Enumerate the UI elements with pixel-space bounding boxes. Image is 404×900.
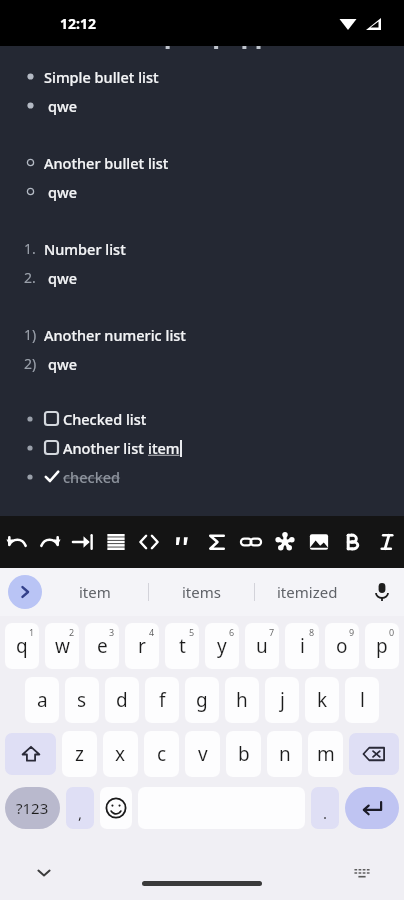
staticText: r <box>138 633 146 659</box>
button[interactable]: Undo <box>0 516 33 568</box>
button[interactable]: Image <box>302 516 336 568</box>
staticText: 3 <box>109 626 115 638</box>
staticText: 12:12 <box>60 14 96 33</box>
staticText: v <box>198 741 208 767</box>
button[interactable]: Another bullet list <box>0 148 404 177</box>
staticText: 1) <box>24 325 37 344</box>
button[interactable]: x <box>103 731 138 777</box>
button[interactable]: Redo <box>33 516 66 568</box>
staticText: qwe <box>48 96 78 116</box>
button[interactable]: Voice input <box>360 568 404 616</box>
button[interactable]: 1) <box>0 320 404 349</box>
button[interactable]: m <box>308 731 343 777</box>
staticText: y <box>217 633 227 659</box>
button[interactable]: Simple bullet list <box>0 62 404 91</box>
staticText: qwe <box>48 268 78 288</box>
button[interactable]: Link <box>234 516 268 568</box>
button[interactable]: g <box>185 677 219 723</box>
staticText: w <box>55 633 70 659</box>
button[interactable]: qwe <box>0 91 404 120</box>
staticText: 6 <box>229 626 235 638</box>
button[interactable]: ?123 <box>5 787 60 829</box>
button[interactable]: d <box>105 677 139 723</box>
staticText: h <box>236 687 248 713</box>
button[interactable]: q <box>5 623 39 669</box>
button[interactable]: More suggestions <box>8 575 42 609</box>
button[interactable]: z <box>62 731 97 777</box>
button[interactable]: c <box>144 731 179 777</box>
button[interactable]: qwe <box>0 177 404 206</box>
button[interactable]: items <box>149 568 254 616</box>
button[interactable]: i <box>285 623 319 669</box>
button[interactable]: Backspace <box>349 733 399 775</box>
button[interactable]: Code <box>132 516 166 568</box>
button[interactable]: Checked list <box>0 404 404 433</box>
button[interactable]: Italic <box>370 516 404 568</box>
staticText: j <box>280 687 285 713</box>
button[interactable]: Switch input method <box>344 855 380 891</box>
staticText: qwe <box>48 182 78 202</box>
staticText: . <box>323 803 328 823</box>
button[interactable]: l <box>345 677 379 723</box>
staticText: 2) <box>24 354 37 373</box>
button[interactable]: item <box>42 568 148 616</box>
button[interactable]: Indent <box>66 516 99 568</box>
button[interactable]: v <box>185 731 220 777</box>
button[interactable]: Another list <box>0 433 404 462</box>
button[interactable]: , <box>66 787 94 829</box>
staticText: m <box>317 741 335 767</box>
staticText: 4 <box>149 626 155 638</box>
button[interactable]: Enter <box>345 787 399 829</box>
button[interactable]: 1. <box>0 234 404 263</box>
button[interactable]: Simple bullet list <box>0 46 404 516</box>
button[interactable]: t <box>165 623 199 669</box>
staticText: 1. <box>24 239 36 258</box>
staticText: Another list <box>63 438 148 458</box>
staticText: i <box>300 633 305 659</box>
button[interactable]: e <box>85 623 119 669</box>
staticText: e <box>97 633 108 659</box>
button[interactable]: Bold <box>336 516 370 568</box>
staticText: item <box>148 438 180 458</box>
staticText: Number list <box>44 239 126 259</box>
staticText: p <box>376 633 388 659</box>
staticText: ?123 <box>16 798 49 818</box>
staticText: qwe <box>48 354 78 374</box>
button[interactable]: Emoji <box>100 787 132 829</box>
button[interactable]: Molecule <box>268 516 302 568</box>
staticText: t <box>179 633 186 659</box>
button[interactable]: j <box>265 677 299 723</box>
staticText: Simple bullet list <box>44 67 159 87</box>
button[interactable]: itemized <box>255 568 360 616</box>
staticText: c <box>157 741 167 767</box>
button[interactable]: checked <box>0 462 404 491</box>
button[interactable]: h <box>225 677 259 723</box>
button[interactable]: s <box>65 677 99 723</box>
button[interactable]: Quote <box>166 516 200 568</box>
button[interactable]: u <box>245 623 279 669</box>
button[interactable]: w <box>45 623 79 669</box>
button[interactable]: r <box>125 623 159 669</box>
staticText: l <box>360 687 365 713</box>
button[interactable]: Shift <box>5 733 56 775</box>
button[interactable]: p <box>365 623 399 669</box>
button[interactable]: n <box>267 731 302 777</box>
button[interactable]: k <box>305 677 339 723</box>
staticText: , <box>78 803 83 823</box>
button[interactable]: Hide keyboard <box>26 855 62 891</box>
button[interactable]: 2) <box>0 349 404 378</box>
button[interactable]: o <box>325 623 359 669</box>
button[interactable]: f <box>145 677 179 723</box>
button[interactable]: 2. <box>0 263 404 292</box>
staticText: n <box>279 741 291 767</box>
button[interactable]: a <box>25 677 59 723</box>
button[interactable]: Math <box>200 516 234 568</box>
button[interactable]: b <box>226 731 261 777</box>
staticText: g <box>196 687 208 713</box>
staticText: 9 <box>349 626 355 638</box>
button[interactable]: List <box>99 516 132 568</box>
staticText: u <box>256 633 268 659</box>
button[interactable]: . <box>311 787 339 829</box>
button[interactable]: y <box>205 623 239 669</box>
